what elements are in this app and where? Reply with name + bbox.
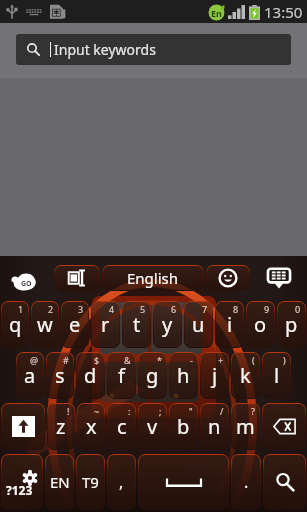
staticText: i (227, 311, 233, 338)
staticText: / (220, 405, 224, 417)
button[interactable]: Search (263, 454, 306, 510)
button[interactable]: . (231, 454, 261, 510)
staticText: j (212, 362, 218, 389)
staticText: g (146, 362, 159, 389)
staticText: ( (252, 354, 255, 366)
button[interactable]: i (215, 301, 244, 348)
button[interactable]: w (31, 301, 59, 348)
staticText: 2 (48, 303, 54, 315)
button[interactable]: o (246, 301, 275, 348)
button[interactable]: b (169, 403, 198, 450)
staticText: o (254, 311, 267, 338)
button[interactable]: g (138, 352, 167, 399)
staticText: h (177, 362, 190, 389)
staticText: Input keywords (54, 40, 156, 59)
staticText: 5 (140, 303, 146, 315)
staticText: x (86, 413, 97, 440)
staticText: q (9, 311, 22, 338)
staticText: EN (50, 472, 70, 492)
button[interactable]: , (107, 454, 136, 510)
button[interactable]: m (231, 403, 260, 450)
button[interactable]: s (46, 352, 74, 399)
staticText: l (274, 362, 280, 389)
button[interactable]: Shift (1, 403, 45, 450)
button[interactable]: u (184, 301, 213, 348)
button[interactable]: Go keyboard (0, 257, 53, 299)
staticText: f (118, 362, 125, 389)
staticText: 7 (202, 303, 208, 315)
staticText: 9 (264, 303, 270, 315)
button[interactable]: l (262, 352, 291, 399)
staticText: ? (251, 405, 255, 417)
button[interactable]: Backspace (262, 403, 306, 450)
button[interactable]: t (122, 301, 151, 348)
button[interactable]: d (76, 352, 105, 399)
button[interactable]: z (47, 403, 75, 450)
staticText: a (24, 362, 36, 389)
button[interactable]: Hide keyboard (251, 257, 307, 299)
staticText: n (208, 413, 221, 440)
staticText: w (37, 311, 53, 338)
staticText: m (236, 413, 255, 440)
button[interactable]: n (200, 403, 229, 450)
button[interactable]: j (200, 352, 229, 399)
staticText: u (192, 311, 205, 338)
staticText: ~ (94, 405, 100, 417)
staticText: 1 (18, 303, 24, 315)
staticText: " (189, 405, 193, 417)
staticText: r (101, 311, 110, 338)
staticText: @ (30, 354, 39, 366)
staticText: y (162, 311, 173, 338)
button[interactable]: Symbols and settings (1, 454, 43, 510)
staticText: 3 (78, 303, 84, 315)
button[interactable]: Input keywords (16, 34, 291, 65)
staticText: # (63, 354, 69, 366)
staticText: s (55, 362, 65, 389)
staticText: + (218, 354, 224, 366)
staticText: ! (67, 405, 70, 417)
staticText: * (157, 354, 162, 366)
button[interactable]: Emoji (206, 265, 250, 291)
staticText: e (69, 311, 81, 338)
button[interactable]: a (16, 352, 44, 399)
button[interactable]: k (231, 352, 260, 399)
staticText: ?123 (6, 482, 33, 498)
button[interactable]: English (102, 265, 204, 291)
staticText: b (177, 413, 190, 440)
staticText: d (84, 362, 97, 389)
staticText: v (147, 413, 158, 440)
button[interactable]: Resize keyboard (54, 265, 100, 291)
staticText: . (244, 471, 249, 493)
staticText: 0 (295, 303, 301, 315)
button[interactable]: T9 (76, 454, 105, 510)
staticText: 4 (109, 303, 115, 315)
staticText: ) (283, 354, 286, 366)
staticText: 8 (233, 303, 239, 315)
button[interactable]: e (61, 301, 89, 348)
staticText: $ (94, 354, 100, 366)
staticText: & (124, 354, 131, 366)
staticText: z (56, 413, 66, 440)
button[interactable]: q (1, 301, 29, 348)
staticText: En (211, 7, 222, 19)
staticText: p (285, 311, 298, 338)
staticText: t (133, 311, 141, 338)
staticText: : (128, 405, 131, 417)
button[interactable]: f (107, 352, 136, 399)
button[interactable]: Space (138, 454, 229, 510)
button[interactable]: h (169, 352, 198, 399)
button[interactable]: r (91, 301, 120, 348)
staticText: GO (21, 279, 32, 289)
button[interactable]: p (277, 301, 306, 348)
staticText: - (190, 354, 193, 366)
button[interactable]: v (138, 403, 167, 450)
staticText: , (119, 471, 124, 493)
button[interactable]: c (107, 403, 136, 450)
staticText: 6 (171, 303, 177, 315)
button[interactable]: x (77, 403, 105, 450)
staticText: ; (159, 405, 162, 417)
staticText: 13:50 (264, 2, 303, 22)
button[interactable]: y (153, 301, 182, 348)
staticText: k (240, 362, 251, 389)
button[interactable]: EN (45, 454, 74, 510)
